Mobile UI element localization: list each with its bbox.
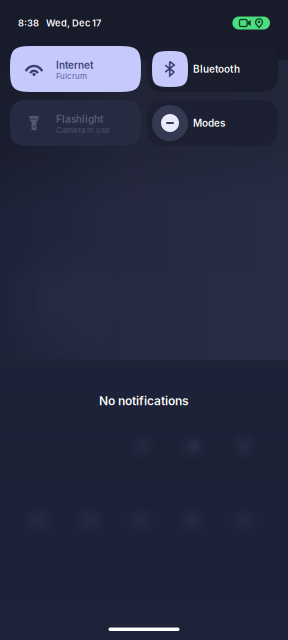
button[interactable]: Bluetooth [147, 46, 278, 92]
staticText: Wed, Dec 17 [46, 17, 101, 29]
button[interactable]: Camera and location in use [232, 16, 270, 29]
staticText: Modes [193, 117, 225, 129]
staticText: Bluetooth [193, 63, 240, 75]
staticText: 8:38 [18, 17, 39, 29]
staticText: Fulcrum [56, 71, 87, 81]
staticText: Flashlight [56, 113, 104, 125]
button[interactable]: Internet [10, 46, 141, 92]
staticText: No notifications [99, 394, 189, 408]
staticText: Camera in use [56, 125, 110, 135]
staticText: Internet [56, 59, 94, 71]
button[interactable]: Flashlight [10, 100, 141, 146]
button[interactable]: Modes [147, 100, 278, 146]
